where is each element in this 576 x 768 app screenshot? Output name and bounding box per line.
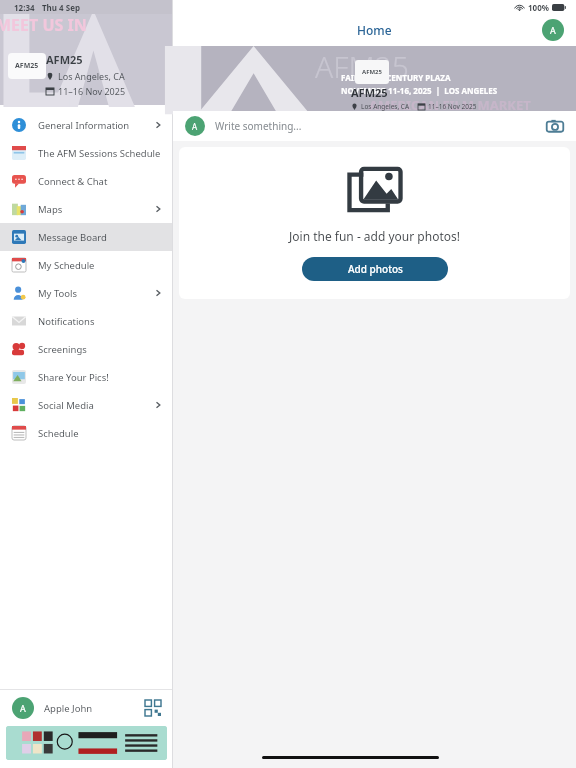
staticText: 12:34 [14,2,35,13]
button[interactable]: My Schedule [0,251,173,279]
button[interactable]: A [173,111,576,141]
staticText: Notifications [38,315,163,328]
staticText: General Information [38,119,153,132]
staticText: Social Media [38,399,153,412]
button[interactable]: Share Your Pics! [0,363,173,391]
button[interactable]: Notifications [0,307,173,335]
staticText: AFM25 [351,85,388,100]
staticText: Write something... [215,119,546,133]
staticText: Screenings [38,343,163,356]
staticText: My Schedule [38,259,163,272]
button[interactable]: Schedule [0,419,173,447]
staticText: AFM25 [315,46,409,87]
staticText: My Tools [38,287,153,300]
staticText: 11–16 Nov 2025 [58,85,126,97]
staticText: FAIRMONT CENTURY PLAZA [341,72,451,83]
staticText: AFM25 [15,61,39,71]
staticText: A [550,24,556,36]
staticText: Message Board [38,231,163,244]
staticText: Thu 4 Sep [42,2,80,13]
button[interactable]: Camera [546,117,564,135]
staticText: AFM25 [362,68,382,76]
button[interactable]: QR code [145,700,161,716]
staticText: 11–16 Nov 2025 [428,102,477,111]
staticText: AMERICAN FILM MARKET [369,96,531,114]
button[interactable]: Maps [0,195,173,223]
button[interactable]: Connect & Chat [0,167,173,195]
staticText: Connect & Chat [38,175,163,188]
button[interactable]: General Information [0,111,173,139]
button[interactable]: Add photos [302,257,448,281]
staticText: MEET US IN [0,14,87,36]
button[interactable]: Social Media [0,391,173,419]
staticText: 100% [528,2,549,13]
staticText: Add photos [348,262,403,276]
staticText: Los Angeles, CA [361,102,410,111]
staticText: A [192,121,198,132]
button[interactable] [6,726,167,760]
button[interactable]: The AFM Sessions Schedule [0,139,173,167]
staticText: AFM25 [46,52,83,67]
button[interactable]: Screenings [0,335,173,363]
staticText: Apple John [44,702,145,715]
button[interactable]: My Tools [0,279,173,307]
button[interactable]: A [0,690,173,726]
staticText: Los Angeles, CA [58,70,125,82]
staticText: The AFM Sessions Schedule [38,147,163,160]
staticText: A [20,702,26,714]
staticText: Join the fun - add your photos! [289,228,460,244]
staticText: NOVEMBER 11-16, 2025 | LOS ANGELES [341,85,498,96]
staticText: Share Your Pics! [38,371,163,384]
staticText: Maps [38,203,153,216]
button[interactable]: Profile [542,19,564,41]
staticText: Home [357,22,392,38]
staticText: Schedule [38,427,163,440]
button[interactable]: Message Board [0,223,173,251]
